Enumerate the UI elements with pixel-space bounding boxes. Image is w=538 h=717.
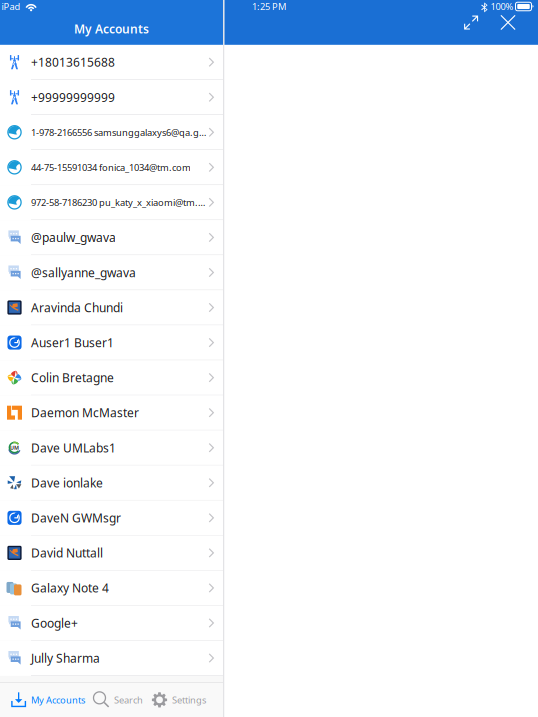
button[interactable]: +99999999999 [0,80,223,115]
button[interactable]: Expand [454,0,488,45]
button[interactable]: Auser1 Buser1 [0,325,223,360]
button[interactable]: Aravinda Chundi [0,290,223,325]
staticText: Dave UMLabs1 [31,440,116,456]
button[interactable]: 1-978-2166556 samsunggalaxys6@qa.gwava [0,115,223,150]
staticText: My Accounts [31,694,85,706]
button[interactable]: Google+ [0,606,223,641]
button[interactable]: Search [89,683,147,717]
staticText: Settings [172,694,206,706]
staticText: Colin Bretagne [31,370,114,386]
button[interactable]: David Nuttall [0,536,223,571]
button[interactable]: Daemon McMaster [0,395,223,430]
staticText: 1-978-2166556 samsunggalaxys6@qa.gwava [31,126,208,138]
button[interactable]: Galaxy Note 4 [0,571,223,606]
staticText: My Accounts [74,21,149,37]
button[interactable]: +18013615688 [0,45,223,80]
staticText: +18013615688 [31,54,115,70]
staticText: David Nuttall [31,545,103,561]
staticText: 1:25 PM [252,0,286,13]
button[interactable]: My Accounts [6,683,89,717]
staticText: Auser1 Buser1 [31,335,114,350]
staticText: 44-75-15591034 fonica_1034@tm.com [31,161,191,173]
staticText: iPad [1,0,20,13]
button[interactable]: 972-58-7186230 pu_katy_x_xiaomi@tm.com [0,185,223,220]
staticText: Google+ [31,615,78,631]
button[interactable]: Jully Sharma [0,641,223,676]
staticText: Dave ionlake [31,475,103,491]
button[interactable]: @sallyanne_gwava [0,255,223,290]
staticText: +99999999999 [31,89,115,105]
staticText: Daemon McMaster [31,405,139,421]
staticText: UM [10,444,19,451]
staticText: DaveN GWMsgr [31,510,121,526]
staticText: Aravinda Chundi [31,300,123,315]
button[interactable]: @paulw_gwava [0,220,223,255]
staticText: 100% [490,0,513,13]
staticText: Galaxy Note 4 [31,580,109,596]
button[interactable]: DaveN GWMsgr [0,501,223,536]
staticText: @paulw_gwava [31,229,116,245]
staticText: Search [114,694,143,706]
button[interactable]: Dave ionlake [0,465,223,500]
button[interactable]: Settings [147,683,210,717]
button[interactable]: Colin Bretagne [0,360,223,395]
staticText: @sallyanne_gwava [31,264,136,280]
staticText: 972-58-7186230 pu_katy_x_xiaomi@tm.com [31,196,208,209]
staticText: Jully Sharma [31,650,100,666]
button[interactable]: Close [488,0,528,45]
button[interactable]: UM [0,430,223,465]
button[interactable]: 44-75-15591034 fonica_1034@tm.com [0,150,223,185]
